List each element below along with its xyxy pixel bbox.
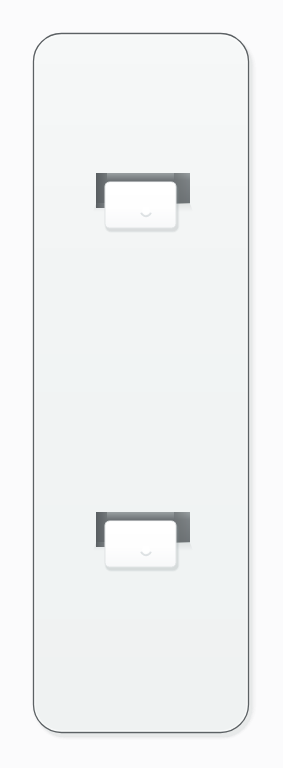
other: Light switch panel with two rocker switc…: [0, 0, 283, 768]
button[interactable]: Bottom light switch: [96, 512, 190, 574]
button[interactable]: Top light switch: [96, 173, 190, 235]
